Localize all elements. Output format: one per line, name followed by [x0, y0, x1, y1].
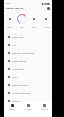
button[interactable]: Settings	[36, 102, 52, 117]
staticText: Sound	[7, 26, 13, 28]
staticText: Samsung Health	[12, 84, 29, 87]
button[interactable]: Samsung Membership	[4, 49, 52, 57]
staticText: Galaxy Watch4	[6, 6, 24, 9]
staticText: Samsung Membership	[12, 52, 35, 55]
staticText: 93%	[20, 26, 24, 28]
staticText: Discover	[24, 108, 32, 110]
button[interactable]: Watch settings	[4, 57, 52, 65]
button[interactable]: Home	[4, 102, 20, 117]
button[interactable]: Connect	[40, 13, 52, 28]
staticText: Advanced features	[12, 92, 31, 95]
button[interactable]: Find	[28, 13, 40, 28]
staticText: 9:41	[6, 2, 10, 5]
staticText: Notifications	[12, 68, 25, 71]
staticText: General	[12, 100, 20, 103]
staticText: Settings	[41, 108, 48, 110]
button[interactable]: Advanced features	[4, 89, 52, 97]
button[interactable]: Notifications	[4, 65, 52, 73]
staticText: Watch settings	[12, 60, 27, 63]
staticText: Home	[9, 108, 15, 110]
staticText: Watch faces	[12, 36, 24, 39]
staticText: Apps	[12, 76, 17, 79]
button[interactable]: Samsung Health	[4, 81, 52, 89]
button[interactable]: Account	[47, 7, 50, 10]
button[interactable]: Watch faces	[4, 33, 52, 41]
button[interactable]: Apps	[4, 73, 52, 81]
staticText: Connect	[43, 26, 50, 28]
button[interactable]: Sound	[4, 13, 16, 28]
button[interactable]: General	[4, 97, 52, 105]
staticText: Find	[32, 26, 36, 28]
button[interactable]: Tiles	[4, 41, 52, 49]
button[interactable]: Battery	[16, 13, 28, 28]
staticText: Tiles	[12, 44, 17, 47]
button[interactable]: Discover	[20, 102, 36, 117]
